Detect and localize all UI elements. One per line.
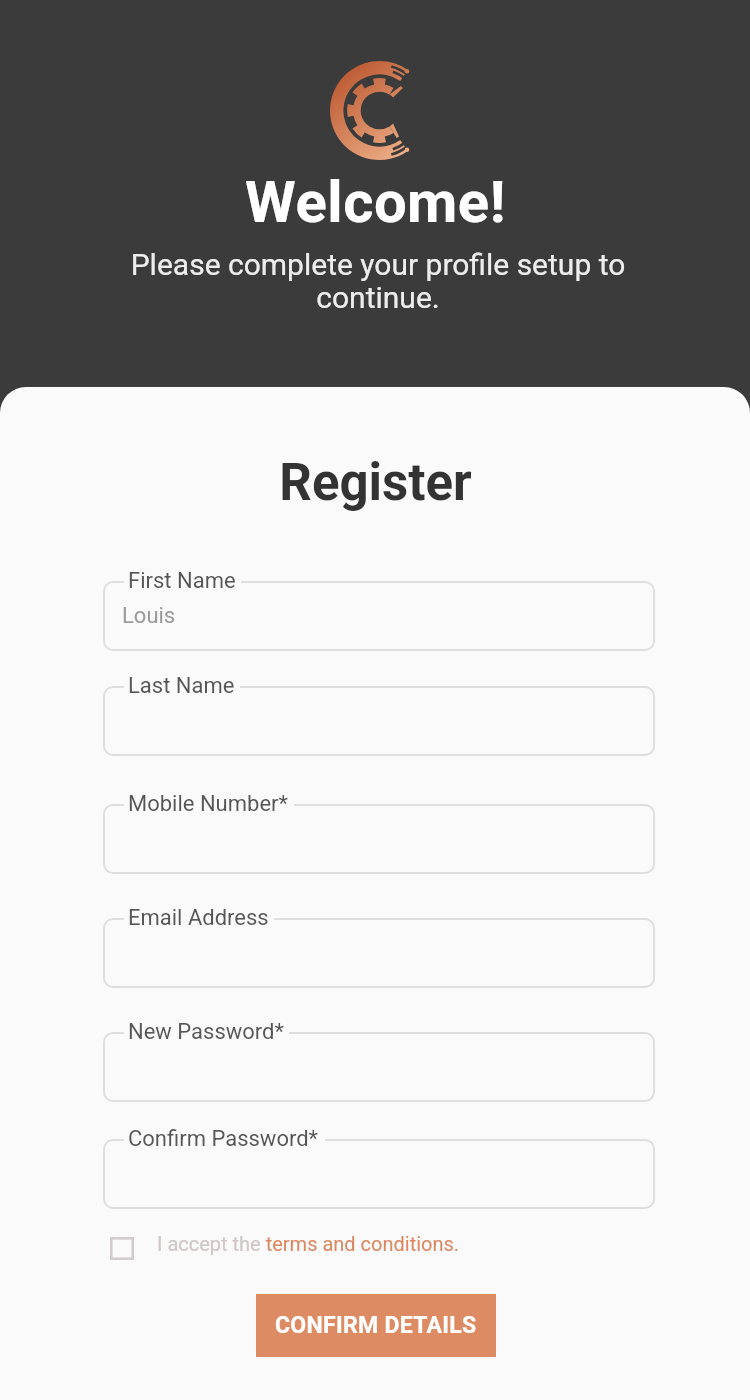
staticText: New Password*	[128, 1019, 284, 1045]
staticText: First Name	[128, 568, 236, 594]
button[interactable]: First Name	[103, 581, 655, 651]
staticText: Register	[279, 453, 472, 513]
staticText: Please complete your profile setup to co…	[123, 247, 633, 315]
staticText: CONFIRM DETAILS	[275, 1312, 477, 1339]
staticText: Mobile Number*	[128, 791, 288, 817]
other: App logo	[330, 61, 429, 160]
staticText: Email Address	[128, 905, 269, 931]
staticText: Louis	[122, 603, 176, 629]
staticText: Last Name	[128, 673, 235, 699]
button[interactable]: CONFIRM DETAILS	[256, 1294, 496, 1357]
button[interactable]: Last Name	[103, 686, 655, 756]
staticText: Welcome!	[245, 168, 506, 236]
button[interactable]: Confirm Password*	[103, 1139, 655, 1209]
button[interactable]: Email Address	[103, 918, 655, 988]
button[interactable]: Accept terms checkbox	[110, 1228, 460, 1268]
button[interactable]: New Password*	[103, 1032, 655, 1102]
button[interactable]: Mobile Number*	[103, 804, 655, 874]
other: Accept terms checkbox	[110, 1237, 134, 1260]
staticText: Confirm Password*	[128, 1126, 319, 1152]
staticText: I accept the terms and conditions.	[157, 1232, 460, 1255]
